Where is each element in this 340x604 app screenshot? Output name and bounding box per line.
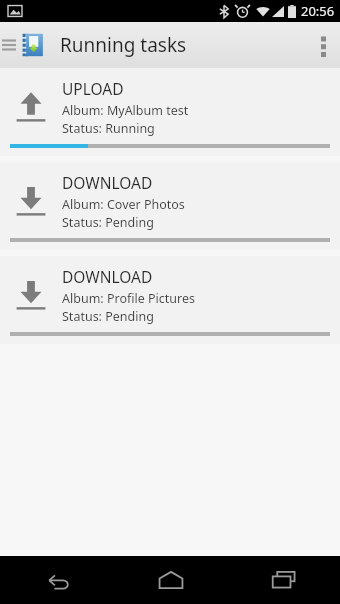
staticText: Running tasks [60, 32, 187, 58]
button[interactable]: Recent apps [227, 556, 340, 604]
button[interactable]: Home [114, 556, 227, 604]
staticText: Album: MyAlbum test [62, 102, 189, 119]
staticText: 20:56 [301, 2, 335, 20]
staticText: Status: Running [62, 120, 155, 137]
staticText: Album: Profile Pictures [62, 290, 195, 307]
button[interactable]: Navigate up [0, 22, 50, 68]
staticText: UPLOAD [62, 78, 124, 99]
staticText: DOWNLOAD [62, 266, 153, 287]
staticText: DOWNLOAD [62, 172, 153, 193]
staticText: Album: Cover Photos [62, 196, 185, 213]
button[interactable]: UPLOAD [0, 68, 340, 156]
button[interactable]: More options [306, 22, 340, 68]
button[interactable]: DOWNLOAD [0, 162, 340, 250]
staticText: Status: Pending [62, 308, 154, 325]
staticText: Status: Pending [62, 214, 154, 231]
button[interactable]: Back [0, 556, 114, 604]
button[interactable]: DOWNLOAD [0, 256, 340, 344]
